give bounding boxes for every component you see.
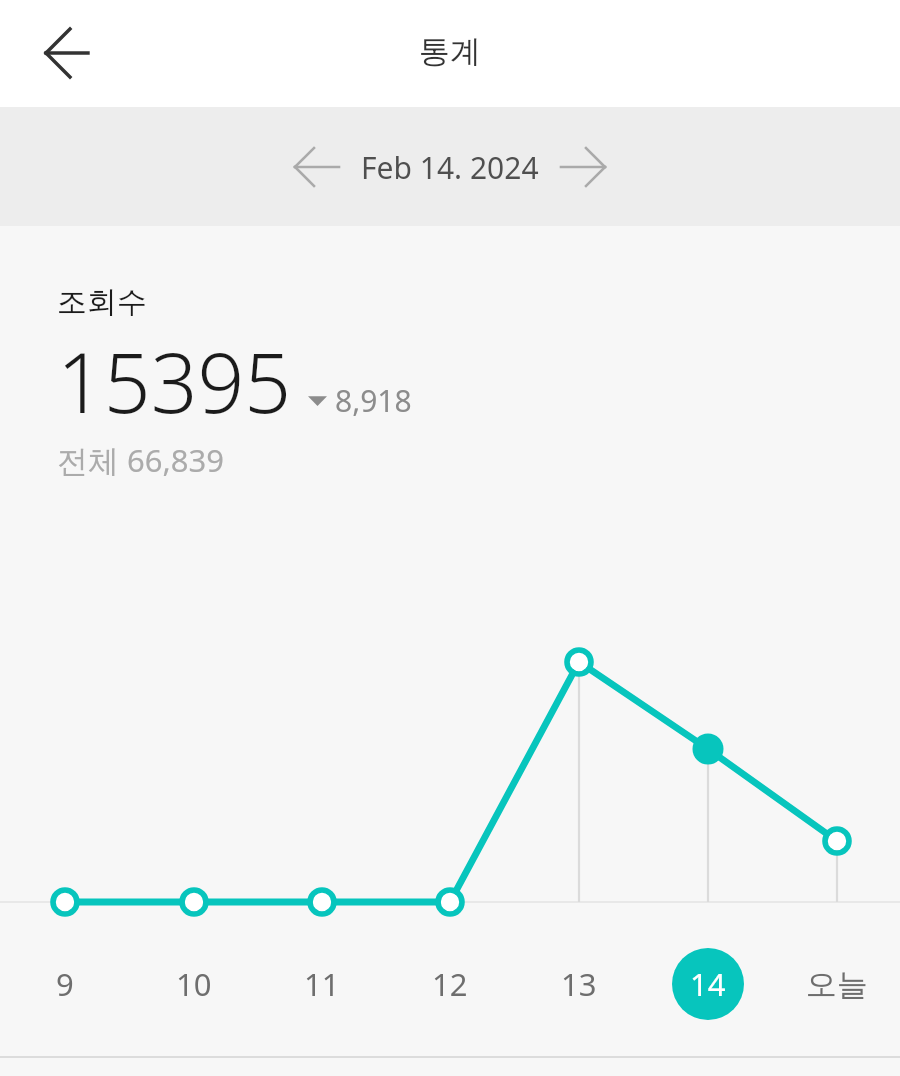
- staticText: 14: [690, 963, 726, 1005]
- button[interactable]: 13: [543, 948, 615, 1020]
- staticText: 13: [561, 963, 597, 1005]
- button[interactable]: 9: [29, 948, 101, 1020]
- staticText: 전체 66,839: [57, 439, 225, 481]
- staticText: 조회수: [57, 283, 147, 321]
- staticText: 9: [56, 963, 74, 1005]
- button[interactable]: Next day: [553, 136, 615, 198]
- staticText: 오늘: [806, 965, 868, 1004]
- button[interactable]: 11: [286, 948, 358, 1020]
- staticText: 12: [432, 963, 468, 1005]
- button[interactable]: 12: [414, 948, 486, 1020]
- button[interactable]: 10: [158, 948, 230, 1020]
- button[interactable]: 14: [672, 948, 744, 1020]
- staticText: 11: [304, 963, 340, 1005]
- staticText: Feb 14. 2024: [361, 147, 539, 188]
- staticText: 15395: [57, 325, 292, 437]
- button[interactable]: Previous day: [285, 136, 347, 198]
- button[interactable]: Back: [26, 21, 90, 85]
- staticText: 10: [176, 963, 212, 1005]
- staticText: 통계: [419, 32, 481, 71]
- staticText: 8,918: [335, 380, 412, 421]
- button[interactable]: 오늘: [801, 948, 873, 1020]
